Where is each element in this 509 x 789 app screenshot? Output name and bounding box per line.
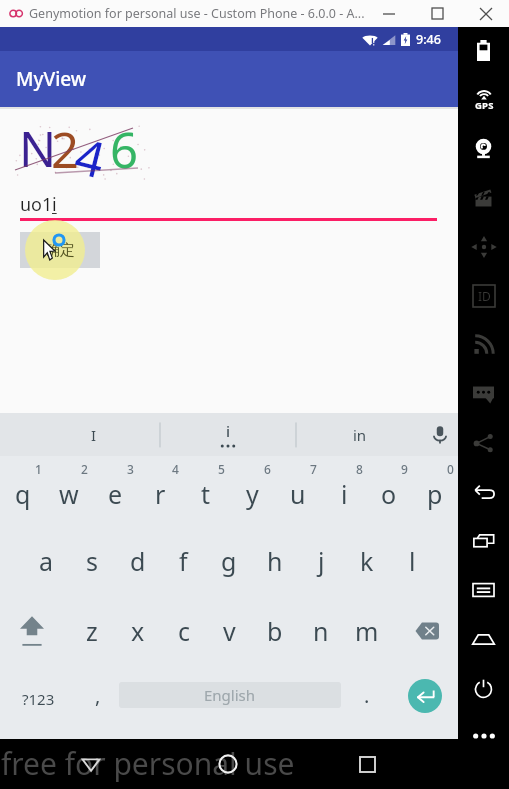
- button[interactable]: b: [252, 596, 298, 665]
- button[interactable]: f: [160, 527, 206, 596]
- button[interactable]: i: [162, 413, 294, 456]
- staticText: 1: [35, 461, 42, 477]
- staticText: 3: [127, 461, 134, 477]
- button[interactable]: c: [161, 596, 207, 665]
- staticText: MyView: [16, 66, 87, 92]
- staticText: 确定: [45, 241, 75, 260]
- button[interactable]: l: [389, 527, 435, 596]
- staticText: 2: [81, 461, 88, 477]
- staticText: 6: [264, 461, 271, 477]
- button[interactable]: Camera: [458, 124, 509, 172]
- staticText: a: [39, 544, 54, 578]
- button[interactable]: d: [115, 527, 161, 596]
- staticText: y: [246, 477, 259, 511]
- button[interactable]: Share: [458, 419, 509, 467]
- button[interactable]: Navigation pad: [458, 223, 509, 271]
- staticText: w: [59, 477, 79, 511]
- button[interactable]: Messages: [458, 370, 509, 418]
- staticText: t: [201, 477, 211, 511]
- button[interactable]: 4: [137, 458, 183, 527]
- button[interactable]: ?123: [0, 662, 76, 736]
- button[interactable]: in: [298, 413, 422, 456]
- button[interactable]: s: [69, 527, 115, 596]
- button[interactable]: Delete: [404, 596, 450, 665]
- staticText: v: [223, 614, 236, 648]
- staticText: o: [381, 477, 397, 511]
- button[interactable]: j: [298, 527, 344, 596]
- staticText: s: [86, 544, 98, 578]
- button[interactable]: k: [344, 527, 390, 596]
- button[interactable]: Battery: [458, 26, 509, 74]
- button[interactable]: English: [119, 682, 341, 708]
- button[interactable]: 5: [183, 458, 229, 527]
- staticText: 4: [68, 121, 113, 193]
- button[interactable]: More: [458, 712, 509, 760]
- button[interactable]: Back: [458, 468, 509, 516]
- button[interactable]: Recent apps: [458, 517, 509, 565]
- button[interactable]: 确定: [20, 232, 100, 268]
- button[interactable]: 7: [275, 458, 321, 527]
- staticText: g: [221, 544, 237, 578]
- button[interactable]: Menu: [458, 566, 509, 614]
- button[interactable]: Shift: [9, 596, 55, 665]
- staticText: j: [318, 544, 325, 578]
- button[interactable]: z: [69, 596, 115, 665]
- staticText: k: [360, 544, 374, 578]
- button[interactable]: Home: [205, 739, 251, 789]
- button[interactable]: .: [345, 662, 389, 736]
- staticText: f: [179, 544, 188, 578]
- button[interactable]: Enter: [389, 662, 458, 736]
- button[interactable]: 8: [321, 458, 367, 527]
- staticText: Genymotion for personal use - Custom Pho…: [29, 5, 365, 22]
- button[interactable]: Maximize: [415, 0, 460, 27]
- staticText: ,: [95, 682, 101, 709]
- button[interactable]: 0: [412, 458, 458, 527]
- staticText: e: [108, 477, 123, 511]
- staticText: x: [131, 614, 145, 648]
- staticText: .: [364, 682, 370, 709]
- button[interactable]: Recent apps: [344, 739, 390, 789]
- button[interactable]: 9: [366, 458, 412, 527]
- button[interactable]: Close: [463, 0, 508, 27]
- staticText: i: [226, 421, 231, 441]
- button[interactable]: Identifiers: [458, 272, 509, 320]
- button[interactable]: 2: [46, 458, 92, 527]
- staticText: b: [267, 614, 283, 648]
- button[interactable]: GPS: [458, 75, 509, 123]
- button[interactable]: h: [252, 527, 298, 596]
- button[interactable]: x: [115, 596, 161, 665]
- staticText: i: [341, 477, 348, 511]
- button[interactable]: ,: [76, 662, 120, 736]
- staticText: 5: [218, 461, 225, 477]
- button[interactable]: Video recorder: [458, 174, 509, 222]
- button[interactable]: Minimize: [366, 0, 411, 27]
- staticText: GPS: [475, 99, 494, 112]
- button[interactable]: v: [206, 596, 252, 665]
- staticText: in: [353, 425, 367, 445]
- staticText: I: [91, 425, 97, 445]
- button[interactable]: g: [206, 527, 252, 596]
- staticText: N: [19, 115, 57, 182]
- button[interactable]: Voice input: [422, 413, 458, 456]
- staticText: q: [15, 477, 31, 511]
- button[interactable]: 3: [92, 458, 138, 527]
- staticText: 9:46: [416, 31, 441, 48]
- button[interactable]: a: [23, 527, 69, 596]
- staticText: n: [313, 614, 329, 648]
- button[interactable]: 6: [229, 458, 275, 527]
- button[interactable]: n: [298, 596, 344, 665]
- button[interactable]: I: [28, 413, 160, 456]
- button[interactable]: m: [344, 596, 390, 665]
- button[interactable]: Home: [458, 615, 509, 663]
- staticText: c: [178, 614, 191, 648]
- staticText: z: [86, 614, 98, 648]
- button[interactable]: Network: [458, 321, 509, 369]
- staticText: free for personal use: [1, 743, 295, 784]
- staticText: i: [52, 192, 57, 217]
- button[interactable]: Back: [68, 739, 114, 789]
- button[interactable]: 1: [0, 458, 46, 527]
- staticText: 7: [310, 461, 317, 477]
- staticText: ID: [478, 288, 491, 304]
- staticText: 9: [401, 461, 408, 477]
- button[interactable]: Power: [458, 664, 509, 712]
